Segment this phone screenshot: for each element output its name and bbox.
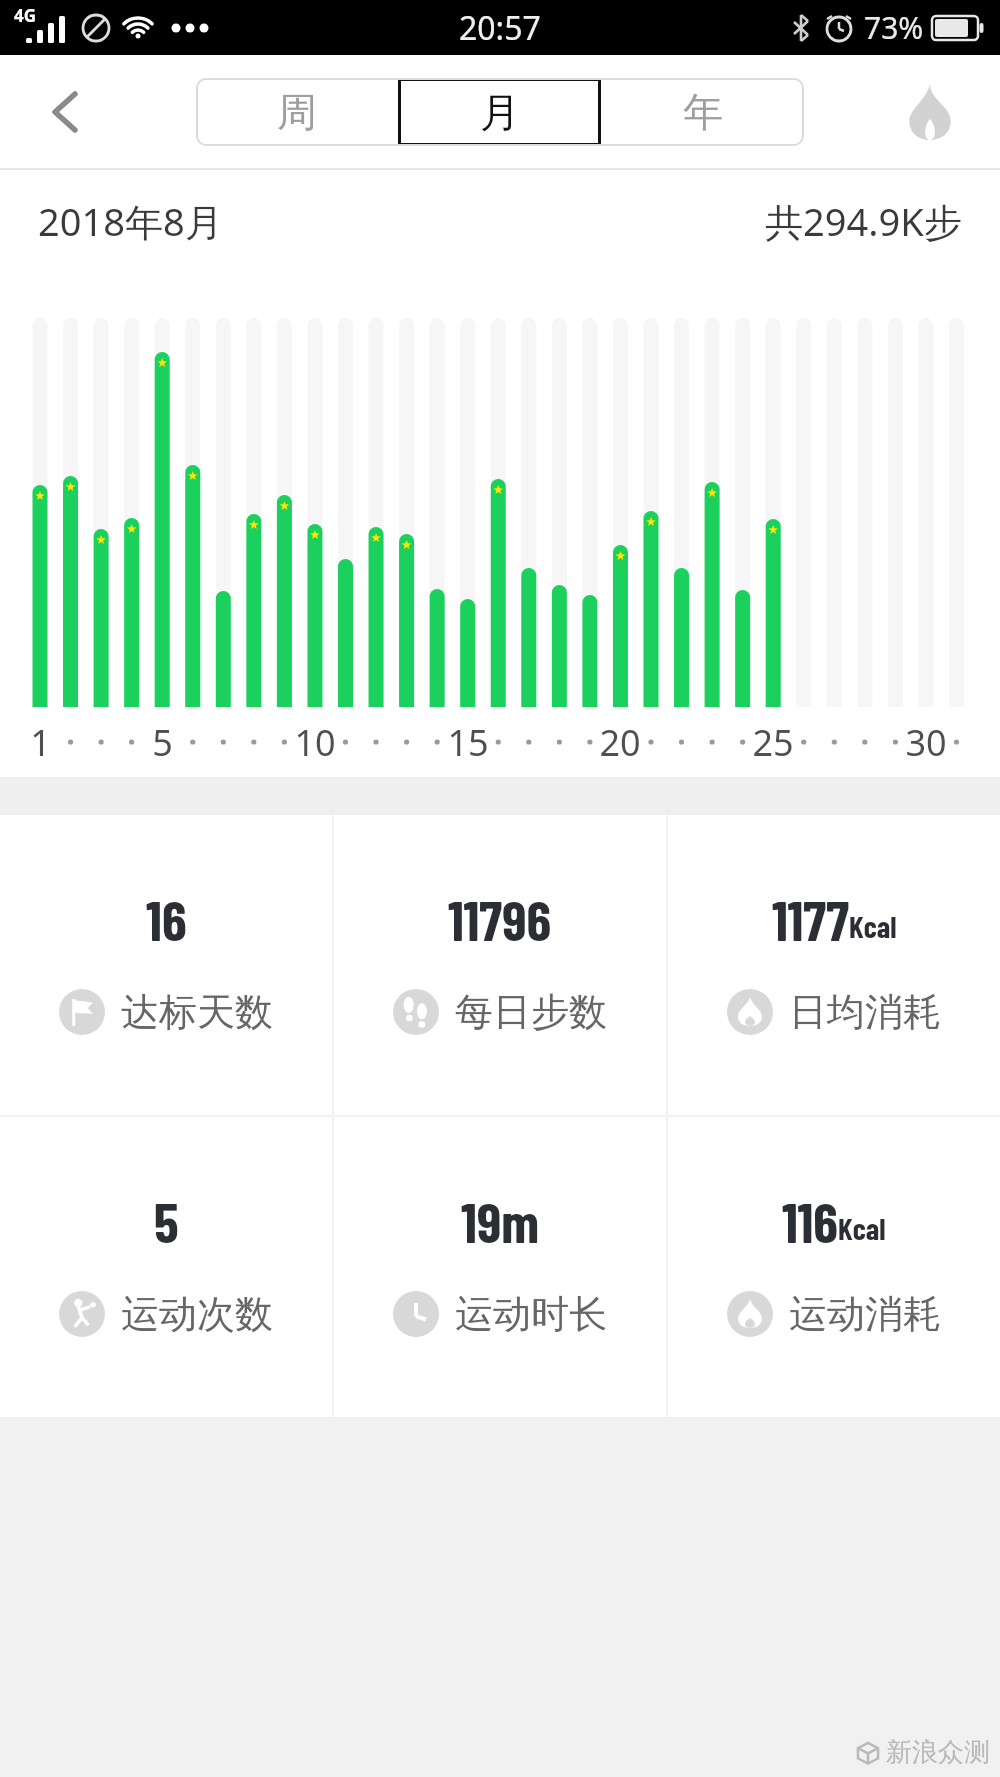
button[interactable] [36,84,92,140]
button[interactable]: 11796 [334,815,666,1115]
button[interactable]: 年 [601,78,804,146]
staticText: 达标天数 [121,988,273,1036]
staticText: 11796 [448,885,552,952]
staticText: 20:57 [459,6,541,50]
staticText: 15 [447,718,489,767]
button[interactable]: 1177 [668,815,1000,1115]
button[interactable]: 116 [668,1117,1000,1417]
staticText: 月 [480,87,520,137]
staticText: Kcal [838,1210,886,1246]
staticText: 周 [277,87,317,137]
staticText: 运动时长 [455,1290,607,1338]
staticText: 日均消耗 [789,988,941,1036]
staticText: 5 [152,718,173,767]
staticText: 25 [752,718,794,767]
staticText: 年 [683,87,723,137]
staticText: 10 [294,718,336,767]
button[interactable]: 周 [196,78,398,146]
staticText: 2018年8月 [38,195,223,247]
staticText: 16 [146,885,187,952]
staticText: 运动次数 [121,1290,273,1338]
staticText: 116 [782,1187,838,1254]
button[interactable]: 19m [334,1117,666,1417]
staticText: 30 [905,718,947,767]
staticText: 运动消耗 [789,1290,941,1338]
staticText: 4G [14,4,37,27]
staticText: 19m [461,1187,540,1254]
staticText: 5 [154,1187,179,1254]
staticText: 73% [864,7,924,48]
button[interactable] [900,82,960,142]
button[interactable]: 月 [398,78,601,146]
staticText: 1177 [772,885,849,952]
staticText: Kcal [849,908,897,944]
staticText: 1 [30,718,51,767]
staticText: 20 [599,718,641,767]
staticText: 每日步数 [455,988,607,1036]
staticText: 共294.9K步 [765,195,962,247]
button[interactable]: 16 [0,815,332,1115]
button[interactable]: 5 [0,1117,332,1417]
staticText: 新浪众测 [886,1736,990,1769]
